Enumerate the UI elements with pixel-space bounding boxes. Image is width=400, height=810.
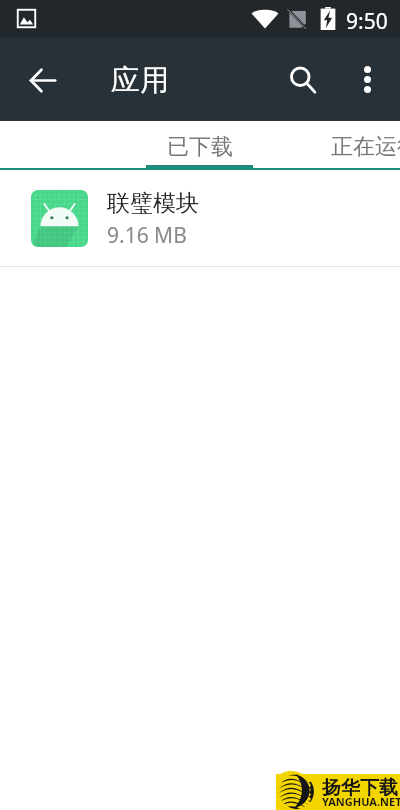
staticText: 9:50 (346, 7, 388, 36)
staticText: 扬华下载 (322, 776, 398, 800)
staticText: 9.16 MB (107, 221, 187, 250)
staticText: 联璧模块 (107, 189, 199, 218)
staticText: 正在运行 (331, 133, 400, 161)
staticText: YANGHUA.NET (322, 794, 400, 809)
button[interactable]: More options (345, 55, 390, 100)
staticText: 应用 (111, 62, 169, 99)
staticText: 已下载 (167, 133, 233, 161)
button[interactable]: 已下载 (146, 127, 253, 167)
button[interactable]: 正在运行 (331, 127, 400, 167)
button[interactable]: Search (280, 55, 328, 103)
button[interactable]: 联璧模块 (0, 170, 400, 266)
button[interactable]: Back (20, 57, 65, 102)
